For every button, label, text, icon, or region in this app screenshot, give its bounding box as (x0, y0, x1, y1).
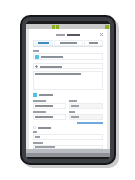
button[interactable] (84, 40, 103, 46)
button[interactable] (33, 93, 53, 97)
button[interactable] (33, 53, 103, 60)
button[interactable] (69, 114, 103, 120)
button[interactable]: Close (99, 32, 103, 36)
button[interactable] (33, 145, 103, 149)
button[interactable] (33, 40, 53, 46)
button[interactable] (33, 103, 66, 109)
button[interactable] (69, 103, 103, 109)
button[interactable] (33, 134, 103, 140)
button[interactable] (33, 114, 66, 120)
button[interactable] (33, 126, 51, 129)
button[interactable] (33, 63, 103, 69)
button[interactable] (33, 71, 103, 90)
button[interactable] (54, 40, 83, 46)
